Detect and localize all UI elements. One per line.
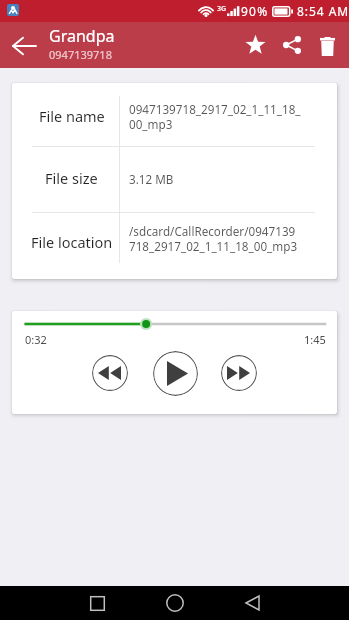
staticText: 8:54 AM (297, 3, 349, 19)
staticText: 3G (217, 4, 227, 14)
button[interactable]: Back (229, 586, 275, 620)
staticText: File location (31, 232, 113, 252)
button[interactable]: Fast forward (221, 355, 257, 391)
button[interactable]: Home (152, 586, 198, 620)
staticText: 0947139718 (49, 47, 112, 62)
button[interactable]: Share (270, 23, 314, 67)
staticText: 1:45 (304, 332, 326, 347)
staticText: Grandpa (49, 25, 115, 47)
button[interactable]: Play (153, 351, 198, 396)
button[interactable]: Delete (305, 23, 349, 67)
staticText: 0:32 (25, 332, 47, 347)
staticText: /sdcard/CallRecorder/0947139 718_2917_02… (129, 223, 298, 255)
button[interactable]: Back (2, 23, 46, 67)
staticText: File size (45, 168, 98, 188)
button[interactable]: Recents (74, 586, 120, 620)
button[interactable]: Favorite (233, 23, 277, 67)
staticText: 3.12 MB (129, 171, 174, 187)
staticText: File name (39, 106, 105, 126)
button[interactable]: Rewind (92, 355, 128, 391)
staticText: 0947139718_2917_02_1_11_18_ 00_mp3 (129, 101, 301, 133)
staticText: 90% (241, 3, 269, 19)
